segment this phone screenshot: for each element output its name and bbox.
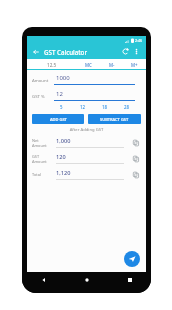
staticText: Amount xyxy=(32,77,54,83)
staticText: 18 xyxy=(102,104,108,110)
staticText: 12 xyxy=(80,104,86,110)
staticText: GST % xyxy=(32,93,54,99)
button[interactable]: Copy xyxy=(130,153,141,164)
staticText: ADD GST xyxy=(50,117,67,122)
staticText: 28 xyxy=(124,104,130,110)
staticText: 12 xyxy=(56,90,63,98)
staticText: GST Calculator xyxy=(44,48,120,56)
button[interactable]: SUBTRACT GST xyxy=(88,114,141,124)
button[interactable]: Back xyxy=(22,272,65,287)
button[interactable]: Refresh xyxy=(120,46,131,57)
staticText: 1,120 xyxy=(56,169,71,177)
button[interactable]: M- xyxy=(100,62,123,68)
staticText: 5 xyxy=(60,104,63,110)
button[interactable]: 28 xyxy=(116,103,138,111)
button[interactable]: 5 xyxy=(51,103,72,111)
button[interactable]: Copy xyxy=(130,137,141,148)
button[interactable]: Recent apps xyxy=(108,272,151,287)
staticText: 120 xyxy=(56,153,66,161)
staticText: MC xyxy=(85,62,92,68)
button[interactable]: Home xyxy=(65,272,108,287)
staticText: M+ xyxy=(131,62,138,68)
staticText: After Adding GST xyxy=(27,127,146,133)
staticText: 1000 xyxy=(56,74,70,82)
button[interactable]: ADD GST xyxy=(32,114,84,124)
button[interactable]: More options xyxy=(131,46,142,57)
button[interactable]: Copy xyxy=(130,169,141,180)
staticText: GST Amount xyxy=(32,154,52,164)
staticText: Total xyxy=(32,172,52,177)
button[interactable]: MC xyxy=(77,62,100,68)
staticText: 12.5 xyxy=(47,62,57,68)
button[interactable]: Send xyxy=(124,251,140,267)
staticText: 1,000 xyxy=(56,137,71,145)
staticText: SUBTRACT GST xyxy=(100,117,129,122)
button[interactable]: M+ xyxy=(123,62,146,68)
staticText: Net Amount xyxy=(32,138,52,148)
staticText: 2:46 xyxy=(135,38,143,43)
button[interactable]: 18 xyxy=(94,103,116,111)
staticText: M- xyxy=(109,62,115,68)
button[interactable]: 12.5 xyxy=(27,62,77,68)
button[interactable]: 12 xyxy=(72,103,94,111)
button[interactable]: Back xyxy=(31,47,41,57)
